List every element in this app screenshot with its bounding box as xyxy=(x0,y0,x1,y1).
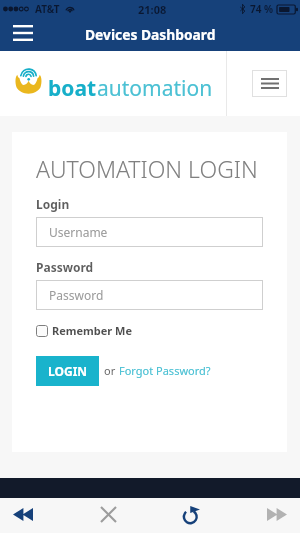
button[interactable]: Stop xyxy=(76,498,140,533)
staticText: Username xyxy=(49,224,108,240)
staticText: automation xyxy=(97,74,213,103)
button[interactable]: Password xyxy=(36,280,263,310)
button[interactable]: Remember Me xyxy=(36,323,133,338)
staticText: Devices Dashboard xyxy=(85,25,216,44)
staticText: Password xyxy=(49,287,104,303)
staticText: Login xyxy=(36,196,70,212)
staticText: 21:08 xyxy=(138,2,167,17)
staticText: boat xyxy=(48,74,97,103)
staticText: Remember Me xyxy=(52,323,133,338)
button[interactable]: Forward xyxy=(236,498,300,533)
staticText: or xyxy=(104,363,119,378)
staticText: AUTOMATION LOGIN xyxy=(36,153,258,184)
button[interactable]: Open navigation menu xyxy=(5,17,41,49)
button[interactable]: Back xyxy=(0,498,64,533)
button[interactable]: Username xyxy=(36,217,263,247)
staticText: Password xyxy=(36,259,94,275)
staticText: AT&T xyxy=(35,2,60,16)
button[interactable]: Toggle navigation xyxy=(252,70,287,97)
staticText: LOGIN xyxy=(48,363,88,379)
button[interactable]: Forgot Password? xyxy=(119,363,211,378)
staticText: 74 % xyxy=(250,2,274,16)
button[interactable]: LOGIN xyxy=(36,356,99,386)
button[interactable]: Reload xyxy=(159,498,223,533)
